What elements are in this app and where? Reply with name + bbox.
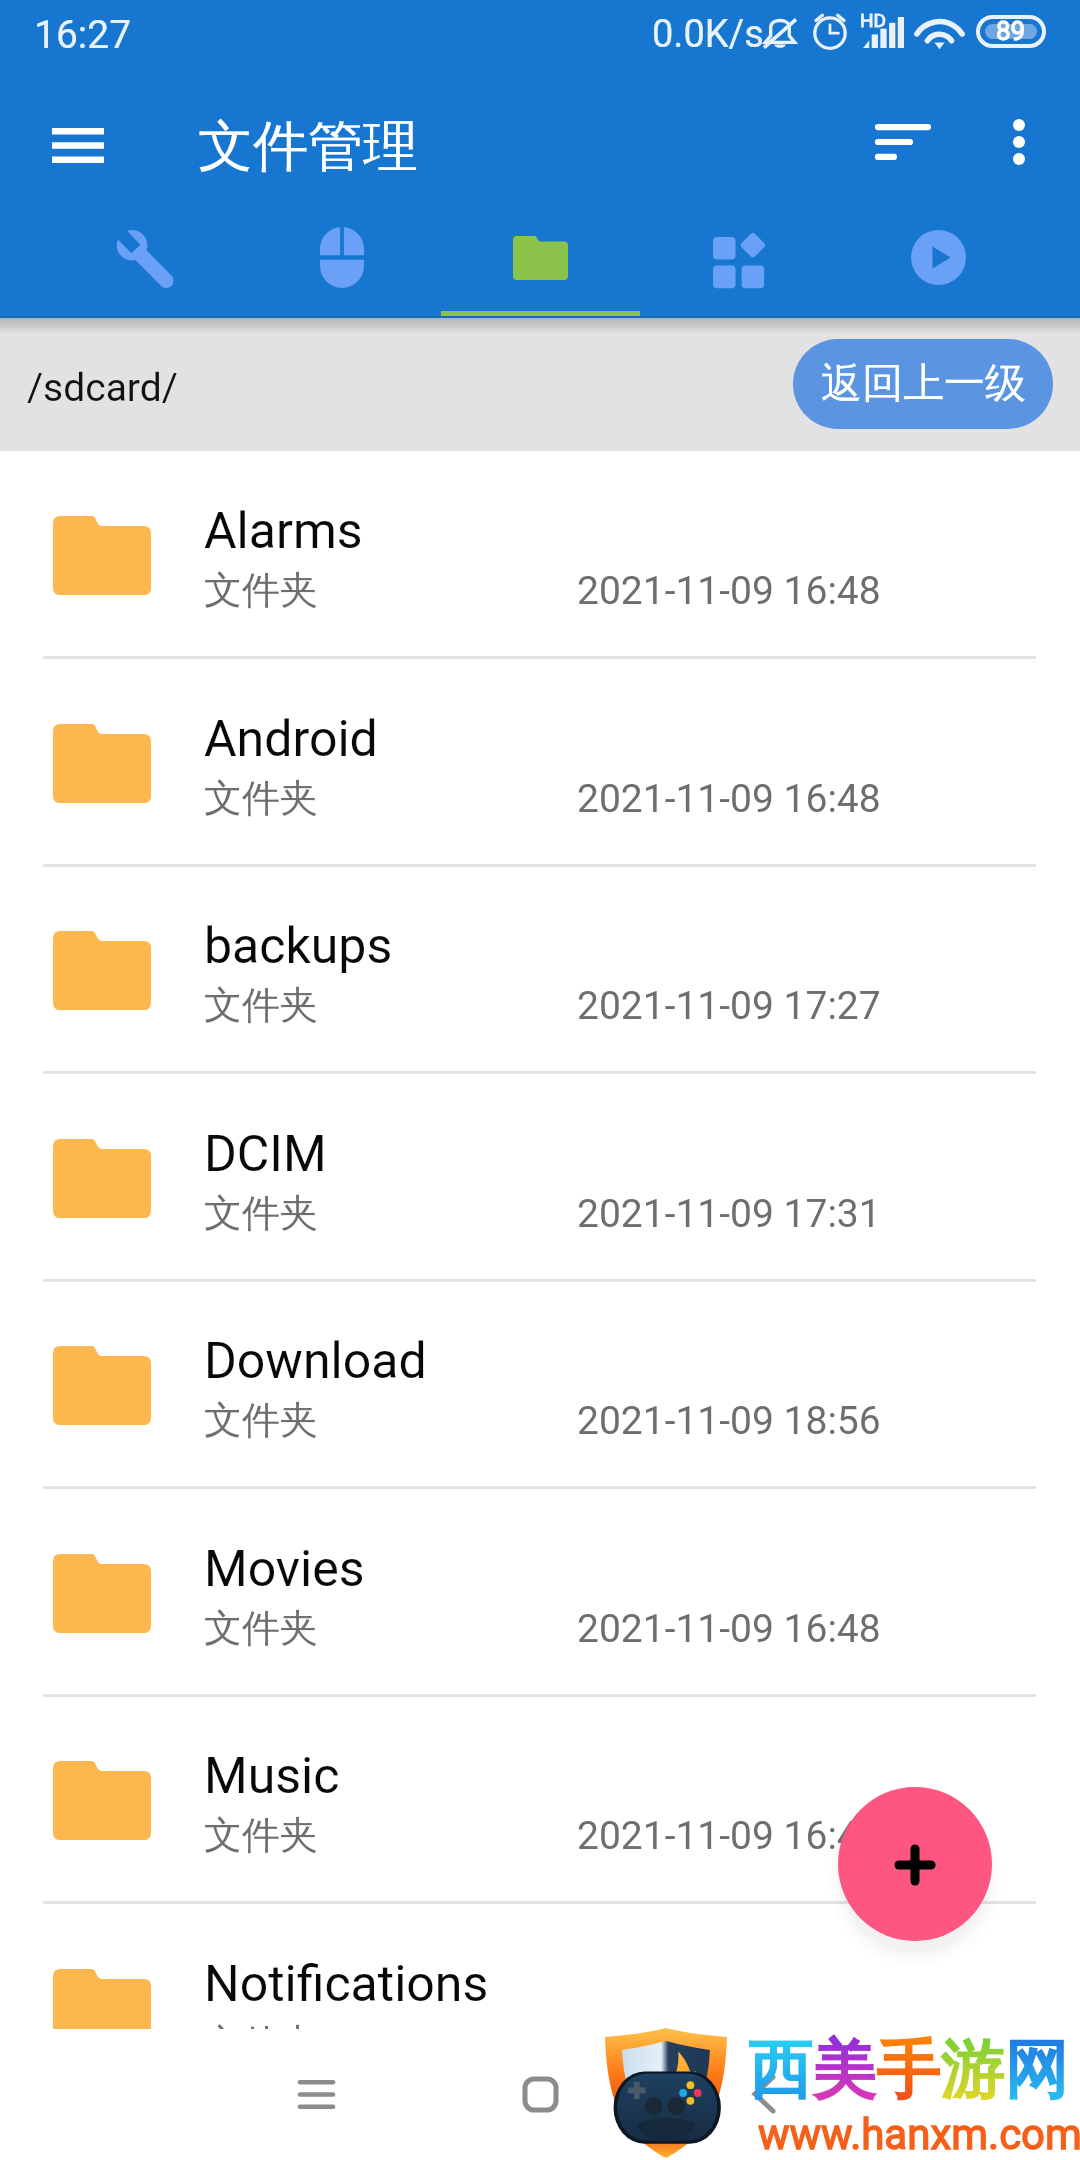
button[interactable]: Navigation menu [28,96,128,194]
staticText: 游 [940,2030,1004,2111]
staticText: 文件夹 [204,1604,318,1652]
button[interactable]: Tools [45,211,243,318]
staticText: 2021-11-09 18:56 [577,1398,881,1444]
button[interactable]: 返回上一级 [793,339,1053,429]
staticText: 返回上一级 [821,358,1026,410]
button[interactable]: Alarms [0,451,1080,659]
staticText: DCIM [204,1125,327,1184]
staticText: HD [860,9,887,31]
staticText: 手 [876,2030,940,2111]
button[interactable]: DCIM [0,1074,1080,1282]
staticText: 文件夹 [204,2019,318,2067]
staticText: /sdcard/ [27,365,178,411]
button[interactable]: Files [441,211,640,318]
staticText: 0.0K/s [652,12,764,57]
button[interactable]: Music [0,1696,1080,1904]
staticText: 89 [996,16,1026,45]
button[interactable]: Media [839,211,1038,318]
staticText: Alarms [204,502,363,561]
button[interactable]: Recent apps [284,2062,348,2126]
staticText: 文件夹 [204,1811,318,1859]
staticText: 文件夹 [204,774,318,822]
staticText: Download [204,1332,427,1391]
button[interactable]: Sort [855,93,951,191]
button[interactable]: Movies [0,1489,1080,1697]
staticText: 西 [748,2030,812,2111]
button[interactable]: Add [838,1787,992,1941]
staticText: 2021-11-09 16:48 [577,568,881,614]
button[interactable]: More options [971,93,1067,191]
staticText: 网 [1004,2030,1068,2111]
staticText: www.hanxm.com [758,2110,1080,2159]
button[interactable]: backups [0,866,1080,1074]
staticText: 文件管理 [198,112,418,181]
staticText: 2021-11-09 16:48 [577,776,881,822]
button[interactable]: Remote control [243,211,441,318]
button[interactable]: Download [0,1281,1080,1489]
staticText: 美 [812,2030,876,2111]
staticText: Music [204,1747,340,1806]
staticText: 2021-11-09 16:48 [577,1606,881,1652]
staticText: 文件夹 [204,1396,318,1444]
staticText: Android [204,710,378,769]
staticText: 2021-11-09 16:48 [577,2021,881,2067]
button[interactable]: Back [732,2062,796,2126]
button[interactable]: Home [508,2062,572,2126]
staticText: 16:27 [34,12,132,58]
staticText: Movies [204,1540,365,1599]
staticText: backups [204,917,393,976]
staticText: Notifications [204,1955,489,2014]
staticText: 文件夹 [204,1189,318,1237]
staticText: 2021-11-09 17:27 [577,983,881,1029]
button[interactable]: Apps [640,211,839,318]
button[interactable]: Notifications [0,1904,1080,2112]
staticText: 文件夹 [204,566,318,614]
button[interactable]: Android [0,659,1080,867]
staticText: 2021-11-09 16:48 [577,1813,881,1859]
staticText: 文件夹 [204,981,318,1029]
staticText: 2021-11-09 17:31 [577,1191,881,1237]
